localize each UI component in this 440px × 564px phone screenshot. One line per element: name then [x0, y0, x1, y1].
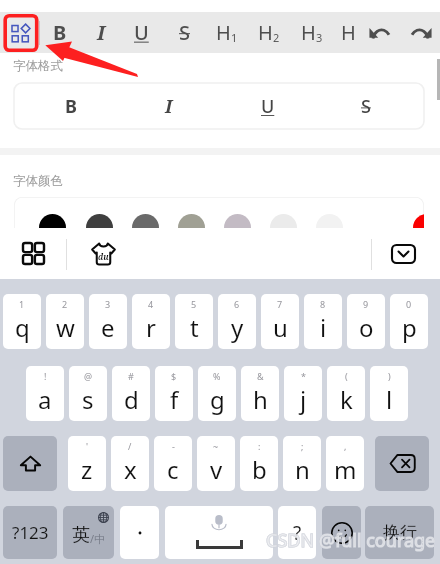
button[interactable]: [39, 214, 66, 241]
button[interactable]: H: [249, 12, 289, 53]
staticText: /: [128, 440, 132, 452]
button[interactable]: ?: [278, 506, 316, 559]
button[interactable]: U: [219, 83, 317, 129]
button[interactable]: I: [120, 83, 218, 129]
button[interactable]: Blocks: [5, 15, 37, 50]
staticText: I: [97, 19, 106, 46]
staticText: 8: [320, 298, 326, 310]
button[interactable]: Backspace: [375, 436, 429, 491]
button[interactable]: [413, 214, 424, 241]
button[interactable]: ?123: [3, 506, 57, 559]
button[interactable]: 7: [261, 294, 299, 349]
button[interactable]: *: [284, 366, 322, 421]
button[interactable]: 8: [304, 294, 342, 349]
button[interactable]: #: [112, 366, 150, 421]
button[interactable]: 5: [175, 294, 213, 349]
staticText: 9: [363, 298, 369, 310]
staticText: 字体颜色: [13, 173, 63, 189]
staticText: i: [320, 311, 327, 344]
button[interactable]: !: [26, 366, 64, 421]
staticText: 4: [148, 298, 154, 310]
staticText: d: [124, 383, 139, 416]
button[interactable]: $: [155, 366, 193, 421]
staticText: 换行: [383, 522, 417, 543]
button[interactable]: [132, 214, 159, 241]
staticText: 2: [62, 298, 68, 310]
staticText: y: [231, 311, 244, 344]
staticText: 1: [19, 298, 25, 310]
staticText: o: [359, 311, 374, 344]
staticText: &: [257, 370, 264, 382]
staticText: 字体格式: [13, 58, 63, 74]
staticText: v: [210, 453, 223, 486]
button[interactable]: %: [198, 366, 236, 421]
staticText: w: [56, 311, 75, 344]
button[interactable]: H: [328, 12, 368, 53]
button[interactable]: (: [327, 366, 365, 421]
button[interactable]: U: [121, 12, 161, 53]
button[interactable]: 2: [46, 294, 84, 349]
button[interactable]: B: [40, 12, 80, 53]
button[interactable]: Redo: [400, 12, 440, 53]
staticText: H: [301, 19, 316, 46]
button[interactable]: @: [69, 366, 107, 421]
button[interactable]: 9: [347, 294, 385, 349]
staticText: 1: [231, 30, 238, 45]
button[interactable]: 1: [3, 294, 41, 349]
button[interactable]: ~: [197, 436, 235, 491]
button[interactable]: &: [241, 366, 279, 421]
staticText: U: [134, 19, 149, 46]
button[interactable]: Collapse keyboard: [383, 228, 423, 279]
button[interactable]: Shift: [3, 436, 57, 491]
button[interactable]: 0: [390, 294, 428, 349]
staticText: $: [171, 370, 177, 382]
staticText: U: [261, 94, 275, 119]
staticText: %: [213, 370, 221, 382]
staticText: p: [402, 311, 417, 344]
button[interactable]: Emoji: [322, 506, 361, 559]
staticText: t: [190, 311, 199, 344]
staticText: 2: [273, 30, 280, 45]
staticText: s: [82, 383, 94, 416]
button[interactable]: 4: [132, 294, 170, 349]
button[interactable]: [86, 214, 113, 241]
other: Shift: [19, 452, 42, 475]
staticText: @: [84, 370, 93, 382]
button[interactable]: ): [370, 366, 408, 421]
staticText: /中: [90, 531, 106, 546]
button[interactable]: -: [154, 436, 192, 491]
button[interactable]: 3: [89, 294, 127, 349]
button[interactable]: Space: [165, 506, 273, 559]
button[interactable]: ,: [326, 436, 364, 491]
staticText: l: [386, 383, 393, 416]
button[interactable]: [270, 214, 297, 241]
button[interactable]: ': [68, 436, 106, 491]
button[interactable]: S: [164, 12, 204, 53]
button[interactable]: [178, 214, 205, 241]
staticText: 6: [234, 298, 240, 310]
button[interactable]: Undo: [360, 12, 400, 53]
button[interactable]: [120, 506, 159, 559]
button[interactable]: /: [111, 436, 149, 491]
button[interactable]: H: [207, 12, 247, 53]
staticText: z: [81, 453, 93, 486]
staticText: *: [301, 370, 306, 382]
button[interactable]: Dewu: [79, 228, 127, 279]
other: Redo: [409, 27, 432, 38]
button[interactable]: 换行: [365, 506, 434, 559]
button[interactable]: S: [317, 83, 415, 129]
button[interactable]: 6: [218, 294, 256, 349]
staticText: 0: [406, 298, 412, 310]
button[interactable]: Grid: [13, 228, 54, 279]
button[interactable]: :: [240, 436, 278, 491]
staticText: x: [124, 453, 137, 486]
button[interactable]: B: [22, 83, 120, 129]
button[interactable]: ;: [283, 436, 321, 491]
button[interactable]: 英: [63, 506, 114, 559]
button[interactable]: I: [81, 12, 121, 53]
staticText: -: [172, 440, 175, 452]
button[interactable]: [224, 214, 251, 241]
button[interactable]: [316, 214, 343, 241]
staticText: u: [273, 311, 288, 344]
button[interactable]: H: [292, 12, 332, 53]
